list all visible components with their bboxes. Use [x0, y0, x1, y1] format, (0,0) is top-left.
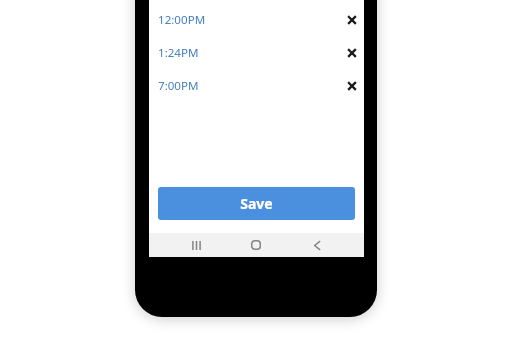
button[interactable]: 7:00PM — [149, 69, 364, 102]
staticText: Save — [240, 194, 273, 213]
button[interactable]: 12:00PM — [149, 3, 364, 36]
staticText: 1:24PM — [158, 45, 199, 61]
button[interactable]: Home — [241, 233, 271, 257]
button[interactable]: Recent apps — [181, 233, 211, 257]
button[interactable]: Remove 7:00PM — [341, 75, 363, 97]
staticText: 12:00PM — [158, 12, 206, 28]
button[interactable]: 1:24PM — [149, 36, 364, 69]
button[interactable]: Remove 1:24PM — [341, 42, 363, 64]
button[interactable]: Remove 12:00PM — [341, 9, 363, 31]
button[interactable]: Save — [158, 187, 355, 220]
staticText: 7:00PM — [158, 78, 199, 94]
button[interactable]: Back — [302, 233, 332, 257]
